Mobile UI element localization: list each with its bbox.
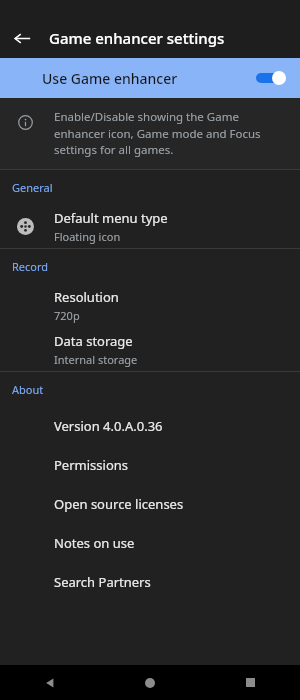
- staticText: Resolution: [54, 288, 119, 306]
- staticText: Search Partners: [54, 573, 151, 591]
- staticText: Permissions: [54, 456, 129, 474]
- button[interactable]: Version 4.0.A.0.36: [0, 406, 300, 445]
- staticText: Data storage: [54, 332, 133, 350]
- button[interactable]: Resolution: [0, 283, 300, 327]
- staticText: Record: [12, 259, 49, 274]
- button[interactable]: Back: [0, 665, 100, 700]
- staticText: Floating icon: [54, 229, 121, 244]
- staticText: Game enhancer settings: [49, 28, 225, 48]
- staticText: Open source licenses: [54, 495, 184, 513]
- button[interactable]: Default menu type: [0, 204, 300, 248]
- staticText: Enable/Disable showing the Game enhancer…: [54, 109, 282, 157]
- staticText: Use Game enhancer: [42, 69, 256, 88]
- button[interactable]: Search Partners: [0, 562, 300, 601]
- button[interactable]: Back: [6, 22, 38, 54]
- staticText: Version 4.0.A.0.36: [54, 417, 163, 435]
- button[interactable]: Data storage: [0, 327, 300, 371]
- staticText: Default menu type: [54, 209, 168, 227]
- button[interactable]: Notes on use: [0, 523, 300, 562]
- button[interactable]: Open source licenses: [0, 484, 300, 523]
- button[interactable]: Recent apps: [200, 665, 300, 700]
- button[interactable]: Home: [100, 665, 200, 700]
- button[interactable]: Permissions: [0, 445, 300, 484]
- staticText: About: [12, 382, 44, 397]
- staticText: 720p: [54, 308, 80, 323]
- staticText: General: [12, 180, 53, 195]
- staticText: Internal storage: [54, 352, 138, 367]
- button[interactable]: Use Game enhancer: [0, 58, 300, 98]
- staticText: Notes on use: [54, 534, 135, 552]
